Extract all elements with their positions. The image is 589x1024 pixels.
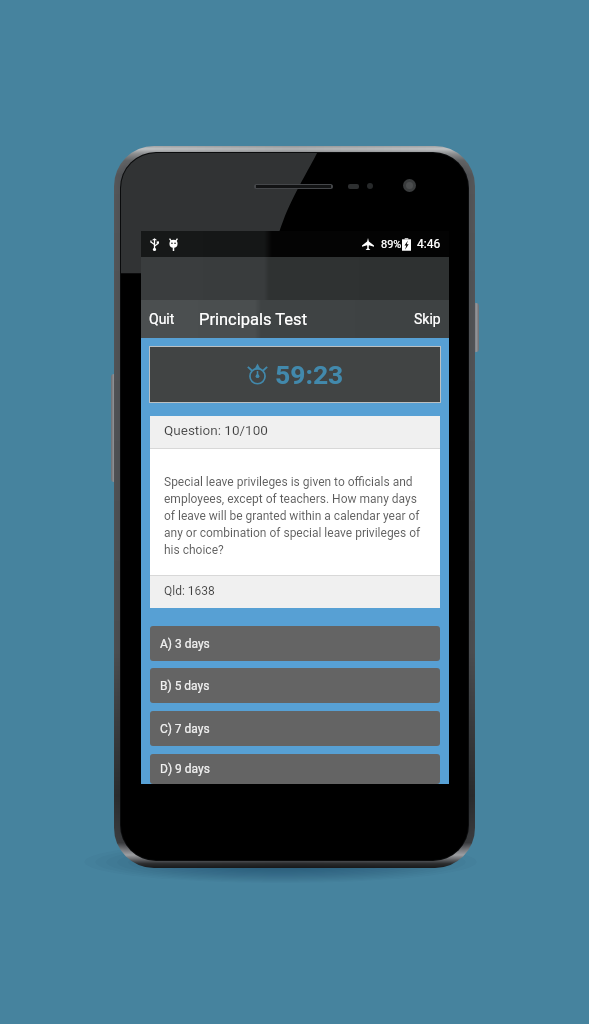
button[interactable]: Quit [141,300,181,338]
button[interactable]: C) 7 days [150,711,440,746]
staticText: Quit [149,311,175,327]
staticText: C) 7 days [160,722,210,736]
staticText: Skip [414,311,441,327]
staticText: 59:23 [275,359,344,390]
button[interactable]: D) 9 days [150,754,440,784]
button[interactable]: Remaining time 59:23 [149,346,441,403]
button[interactable]: Skip [408,300,449,338]
staticText: 4:46 [417,237,441,251]
button[interactable]: A) 3 days [150,626,440,661]
staticText: D) 9 days [160,762,210,776]
staticText: Qld: 1638 [164,584,215,598]
staticText: Question: 10/100 [164,422,268,438]
staticText: 89% [381,238,402,251]
staticText: B) 5 days [160,679,210,693]
staticText: Principals Test [199,310,308,329]
staticText: A) 3 days [160,637,210,651]
staticText: Special leave privileges is given to off… [164,475,427,557]
button[interactable]: B) 5 days [150,668,440,703]
